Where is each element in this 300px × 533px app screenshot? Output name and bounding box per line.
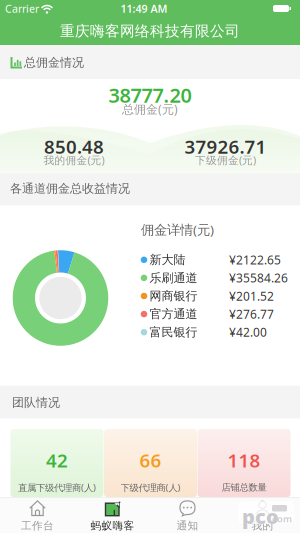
button[interactable]: 118: [197, 429, 290, 497]
staticText: 总佣金(元): [122, 101, 178, 117]
staticText: 66: [139, 448, 161, 473]
staticText: Carrier: [5, 1, 39, 16]
staticText: 团队情况: [12, 395, 60, 410]
staticText: 店铺总数量: [221, 482, 266, 493]
staticText: pco: [242, 503, 279, 530]
staticText: 118: [227, 448, 260, 473]
staticText: 重庆嗨客网络科技有限公司: [60, 22, 240, 40]
staticText: .com: [269, 512, 292, 525]
staticText: 网商银行: [149, 289, 197, 303]
staticText: 42: [46, 448, 68, 473]
staticText: ¥35584.26: [229, 270, 288, 286]
button[interactable]: 通知: [150, 498, 224, 533]
button[interactable]: 66: [104, 429, 197, 497]
staticText: 佣金详情(元): [141, 221, 214, 238]
staticText: 下级代理商(人): [120, 481, 180, 494]
staticText: 工作台: [21, 519, 54, 532]
staticText: ¥276.77: [229, 306, 274, 322]
staticText: 通知: [176, 519, 198, 532]
staticText: 下级佣金(元): [195, 153, 256, 167]
button[interactable]: 我的: [225, 498, 299, 533]
staticText: 各通道佣金总收益情况: [10, 181, 130, 196]
button[interactable]: 工作台: [0, 498, 74, 533]
staticText: 我的: [251, 519, 273, 532]
staticText: 官方通道: [149, 307, 197, 321]
staticText: ¥201.52: [229, 288, 274, 304]
button[interactable]: 42: [10, 429, 103, 497]
staticText: 38777.20: [108, 82, 191, 108]
staticText: 蚂蚁嗨客: [90, 519, 134, 532]
staticText: 富民银行: [149, 325, 197, 339]
staticText: 850.48: [44, 134, 104, 159]
staticText: ¥2122.65: [229, 252, 281, 268]
staticText: 我的佣金(元): [43, 153, 104, 167]
staticText: 11:49 AM: [120, 1, 167, 16]
staticText: ¥42.00: [229, 324, 267, 340]
staticText: 乐刷通道: [149, 270, 197, 285]
staticText: 37926.71: [184, 134, 266, 159]
staticText: 总佣金情况: [24, 55, 84, 70]
staticText: 直属下级代理商(人): [18, 481, 96, 494]
staticText: 新大陆: [149, 252, 185, 267]
button[interactable]: 蚂蚁嗨客: [75, 498, 149, 533]
